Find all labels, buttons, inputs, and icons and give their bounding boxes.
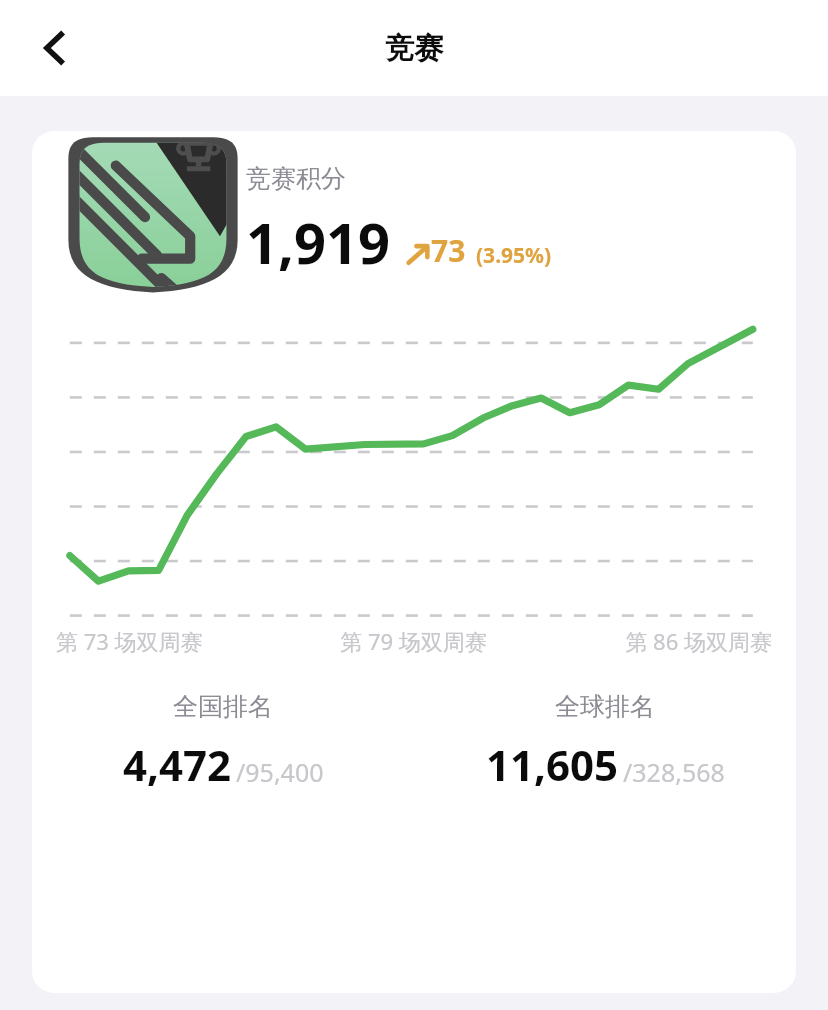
staticText: 全球排名 <box>555 691 655 722</box>
button[interactable]: Back <box>17 10 93 86</box>
staticText: 第 86 场双周赛 <box>533 626 772 656</box>
staticText: 11,605 <box>486 736 619 793</box>
button[interactable]: 全球排名 <box>414 691 796 793</box>
button[interactable]: 竞赛积分 <box>32 131 796 993</box>
staticText: 第 79 场双周赛 <box>294 626 533 656</box>
staticText: 第 73 场双周赛 <box>56 626 294 656</box>
staticText: /328,568 <box>623 755 725 789</box>
button[interactable]: 全国排名 <box>32 691 414 793</box>
staticText: 竞赛积分 <box>246 163 346 194</box>
staticText: 竞赛 <box>385 30 443 67</box>
staticText: 4,472 <box>123 736 232 793</box>
staticText: 1,919 <box>246 204 391 280</box>
staticText: (3.95%) <box>476 241 552 270</box>
staticText: 全国排名 <box>173 691 273 722</box>
staticText: 73 <box>431 230 466 271</box>
staticText: /95,400 <box>236 755 324 789</box>
